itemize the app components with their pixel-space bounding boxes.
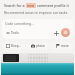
staticText: Deep… [11, 44, 21, 48]
button[interactable]: Tools [5, 30, 20, 36]
staticText: Code something… [5, 21, 34, 26]
staticText: comment profile it [36, 3, 69, 8]
staticText: Search for a [4, 3, 26, 8]
staticText: more [61, 44, 69, 48]
button[interactable]: Device image [1, 53, 74, 75]
staticText: Tools [11, 31, 19, 35]
staticText: photo [36, 44, 45, 48]
button[interactable]: more [51, 42, 73, 50]
button[interactable]: Add attachment [52, 29, 60, 37]
button[interactable]: Deep… [2, 42, 25, 50]
button[interactable]: Code something… [2, 19, 73, 39]
button[interactable]: photo [27, 42, 49, 50]
staticText: Recommend areas to improve our tasks [4, 10, 68, 15]
staticText: new [27, 3, 35, 8]
button[interactable]: Send [61, 28, 70, 37]
